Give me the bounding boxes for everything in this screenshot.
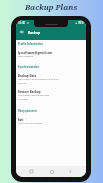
button[interactable]: Back <box>18 28 26 36</box>
staticText: 70% <box>78 21 84 25</box>
staticText: Your photos will be backed up to your ac… <box>18 78 59 84</box>
staticText: Exit <box>18 118 24 122</box>
staticText: Profile Information <box>18 42 43 46</box>
staticText: Okey qbontrol <box>18 109 37 113</box>
staticText: Byte Software <box>18 55 33 58</box>
staticText: Restore Backup <box>18 90 41 94</box>
button[interactable]: Back <box>66 167 75 176</box>
button[interactable]: lycsoftware@gmail.com <box>18 51 84 58</box>
button[interactable]: Recents <box>27 167 36 176</box>
staticText: lycsoftware@gmail.com <box>18 51 53 55</box>
staticText: It transfers your backup plan as before <box>18 94 50 100</box>
staticText: Backup Plans <box>25 2 78 12</box>
staticText: Backup <box>28 30 41 34</box>
button[interactable]: Backup Data <box>18 74 84 84</box>
button[interactable]: Exit <box>18 118 84 125</box>
staticText: 10:30 <box>18 21 26 25</box>
staticText: Synchronization <box>18 65 39 69</box>
button[interactable]: Restore Backup <box>18 90 84 100</box>
staticText: Backup Data <box>18 74 37 78</box>
staticText: Check out the account <box>18 122 43 125</box>
button[interactable]: Home <box>47 167 56 176</box>
